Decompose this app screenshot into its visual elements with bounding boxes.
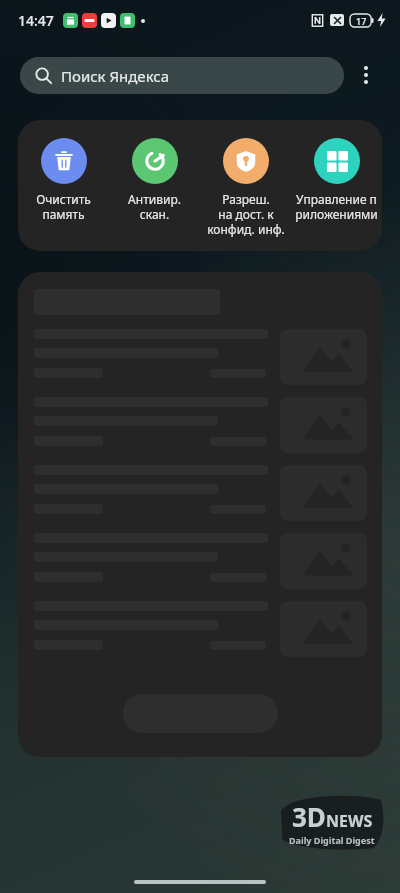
staticText: Daily Digital Digest	[289, 834, 375, 846]
staticText: Поиск Яндекса	[61, 66, 170, 86]
staticText: Антивир. скан.	[128, 191, 181, 222]
staticText: 3D	[292, 799, 326, 834]
button[interactable]: Очистить память	[18, 138, 109, 222]
staticText: Разреш. на дост. к конфид. инф.	[207, 191, 285, 237]
staticText: 14:47	[18, 11, 54, 30]
button[interactable]: Разреш. на дост. к конфид. инф.	[200, 138, 291, 237]
staticText: Очистить память	[36, 191, 91, 222]
staticText: 17	[356, 15, 367, 27]
staticText: NEWS	[326, 810, 373, 832]
button[interactable]: More options	[344, 53, 388, 97]
staticText: Управление п риложениями	[295, 191, 378, 222]
button[interactable]: Антивир. скан.	[109, 138, 200, 222]
button[interactable]: Поиск Яндекса	[20, 57, 344, 94]
button[interactable]: Управление п риложениями	[291, 138, 382, 222]
